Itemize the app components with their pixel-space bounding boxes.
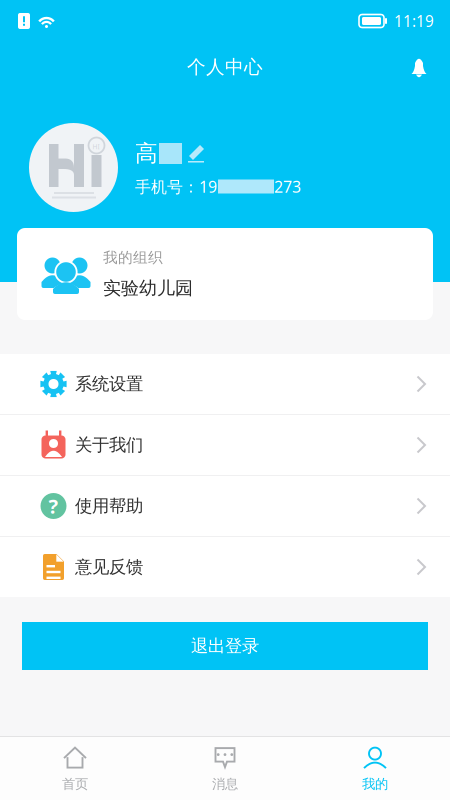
staticText: 使用帮助 [75, 495, 143, 517]
staticText: 273 [274, 176, 301, 197]
button[interactable]: 通知 [397, 45, 441, 89]
staticText: 实验幼儿园 [103, 277, 193, 300]
staticText: 系统设置 [75, 373, 143, 395]
button[interactable]: 关于我们 [0, 415, 450, 475]
button[interactable]: ? [0, 476, 450, 536]
button[interactable]: 意见反馈 [0, 537, 450, 597]
staticText: 11:19 [394, 11, 434, 31]
staticText: ? [48, 492, 58, 520]
button[interactable]: 我的组织 [17, 228, 433, 320]
button[interactable]: 退出登录 [22, 622, 428, 670]
staticText: 退出登录 [191, 635, 259, 657]
button[interactable]: 我的 [300, 737, 450, 800]
button[interactable]: 系统设置 [0, 354, 450, 414]
staticText: 意见反馈 [75, 556, 143, 578]
staticText: 手机号：19 [135, 176, 217, 197]
staticText: 个人中心 [187, 55, 263, 79]
button[interactable]: 消息 [150, 737, 300, 800]
staticText: 关于我们 [75, 434, 143, 456]
staticText: 首页 [62, 776, 88, 792]
staticText: 消息 [212, 776, 238, 792]
staticText: HI [92, 142, 99, 151]
staticText: 我的 [362, 776, 388, 792]
staticText: 我的组织 [103, 248, 163, 267]
staticText: 高 [135, 139, 158, 168]
button[interactable]: 首页 [0, 737, 150, 800]
